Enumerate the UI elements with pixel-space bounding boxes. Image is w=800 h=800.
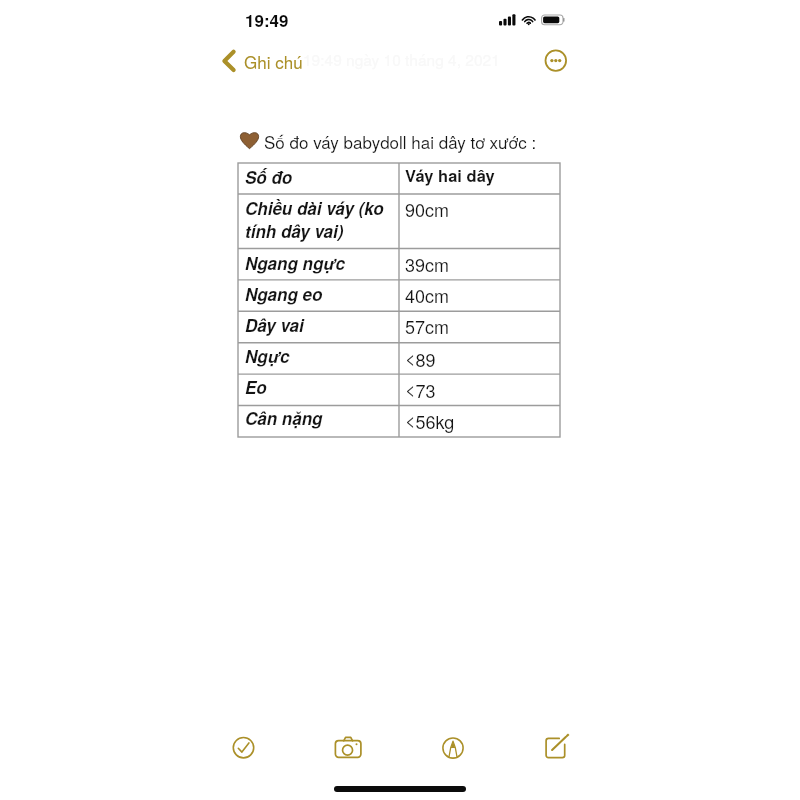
staticText: Ngực — [245, 344, 395, 368]
button[interactable]: Checklist — [223, 728, 264, 768]
staticText: Eo — [245, 375, 395, 399]
staticText: Dây vai — [245, 313, 395, 337]
staticText: Cân nặng — [245, 406, 395, 430]
staticText: 90cm — [405, 196, 450, 222]
staticText: 19:49 — [245, 8, 289, 32]
staticText: Số đo — [245, 165, 395, 189]
button[interactable]: More options — [538, 43, 574, 79]
staticText: Ghi chú — [244, 49, 303, 73]
staticText: 57cm — [405, 313, 450, 339]
button[interactable]: Ghi chú — [218, 44, 307, 78]
button[interactable]: Markup — [433, 728, 474, 768]
staticText: Ngang ngực — [245, 251, 395, 275]
staticText: Ngang eo — [245, 282, 395, 306]
button[interactable]: New note — [540, 728, 581, 768]
staticText: Váy hai dây — [405, 163, 495, 187]
staticText: Chiều dài váy (ko tính dây vai) — [245, 196, 395, 243]
staticText: <73 — [405, 375, 436, 403]
staticText: 40cm — [405, 282, 450, 308]
staticText: 39cm — [405, 251, 450, 277]
staticText: Số đo váy babydoll hai dây tơ xước : — [264, 129, 537, 153]
button[interactable]: Camera — [328, 728, 372, 768]
staticText: <89 — [405, 344, 436, 372]
staticText: <56kg — [405, 406, 455, 434]
